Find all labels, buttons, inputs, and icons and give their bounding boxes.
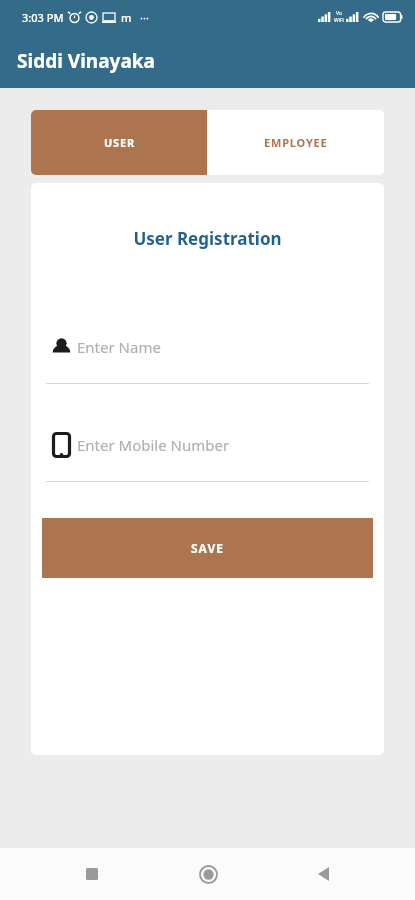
button[interactable]: USER <box>31 110 207 175</box>
staticText: Enter Mobile Number <box>77 435 230 455</box>
staticText: Vo <box>336 10 342 17</box>
staticText: USER <box>104 135 135 150</box>
staticText: Enter Name <box>77 337 161 357</box>
button[interactable]: Home <box>186 852 230 896</box>
staticText: Siddi Vinayaka <box>17 48 155 74</box>
staticText: m <box>121 10 132 25</box>
staticText: EMPLOYEE <box>264 135 328 150</box>
staticText: 3:03 PM <box>22 10 64 25</box>
staticText: WiFi <box>334 17 344 24</box>
staticText: SAVE <box>191 540 224 556</box>
staticText: User Registration <box>31 227 384 250</box>
button[interactable]: Back <box>301 852 345 896</box>
button[interactable]: EMPLOYEE <box>207 110 384 175</box>
button[interactable]: SAVE <box>42 518 373 578</box>
staticText: ··· <box>140 10 149 25</box>
button[interactable]: Recents <box>70 852 114 896</box>
